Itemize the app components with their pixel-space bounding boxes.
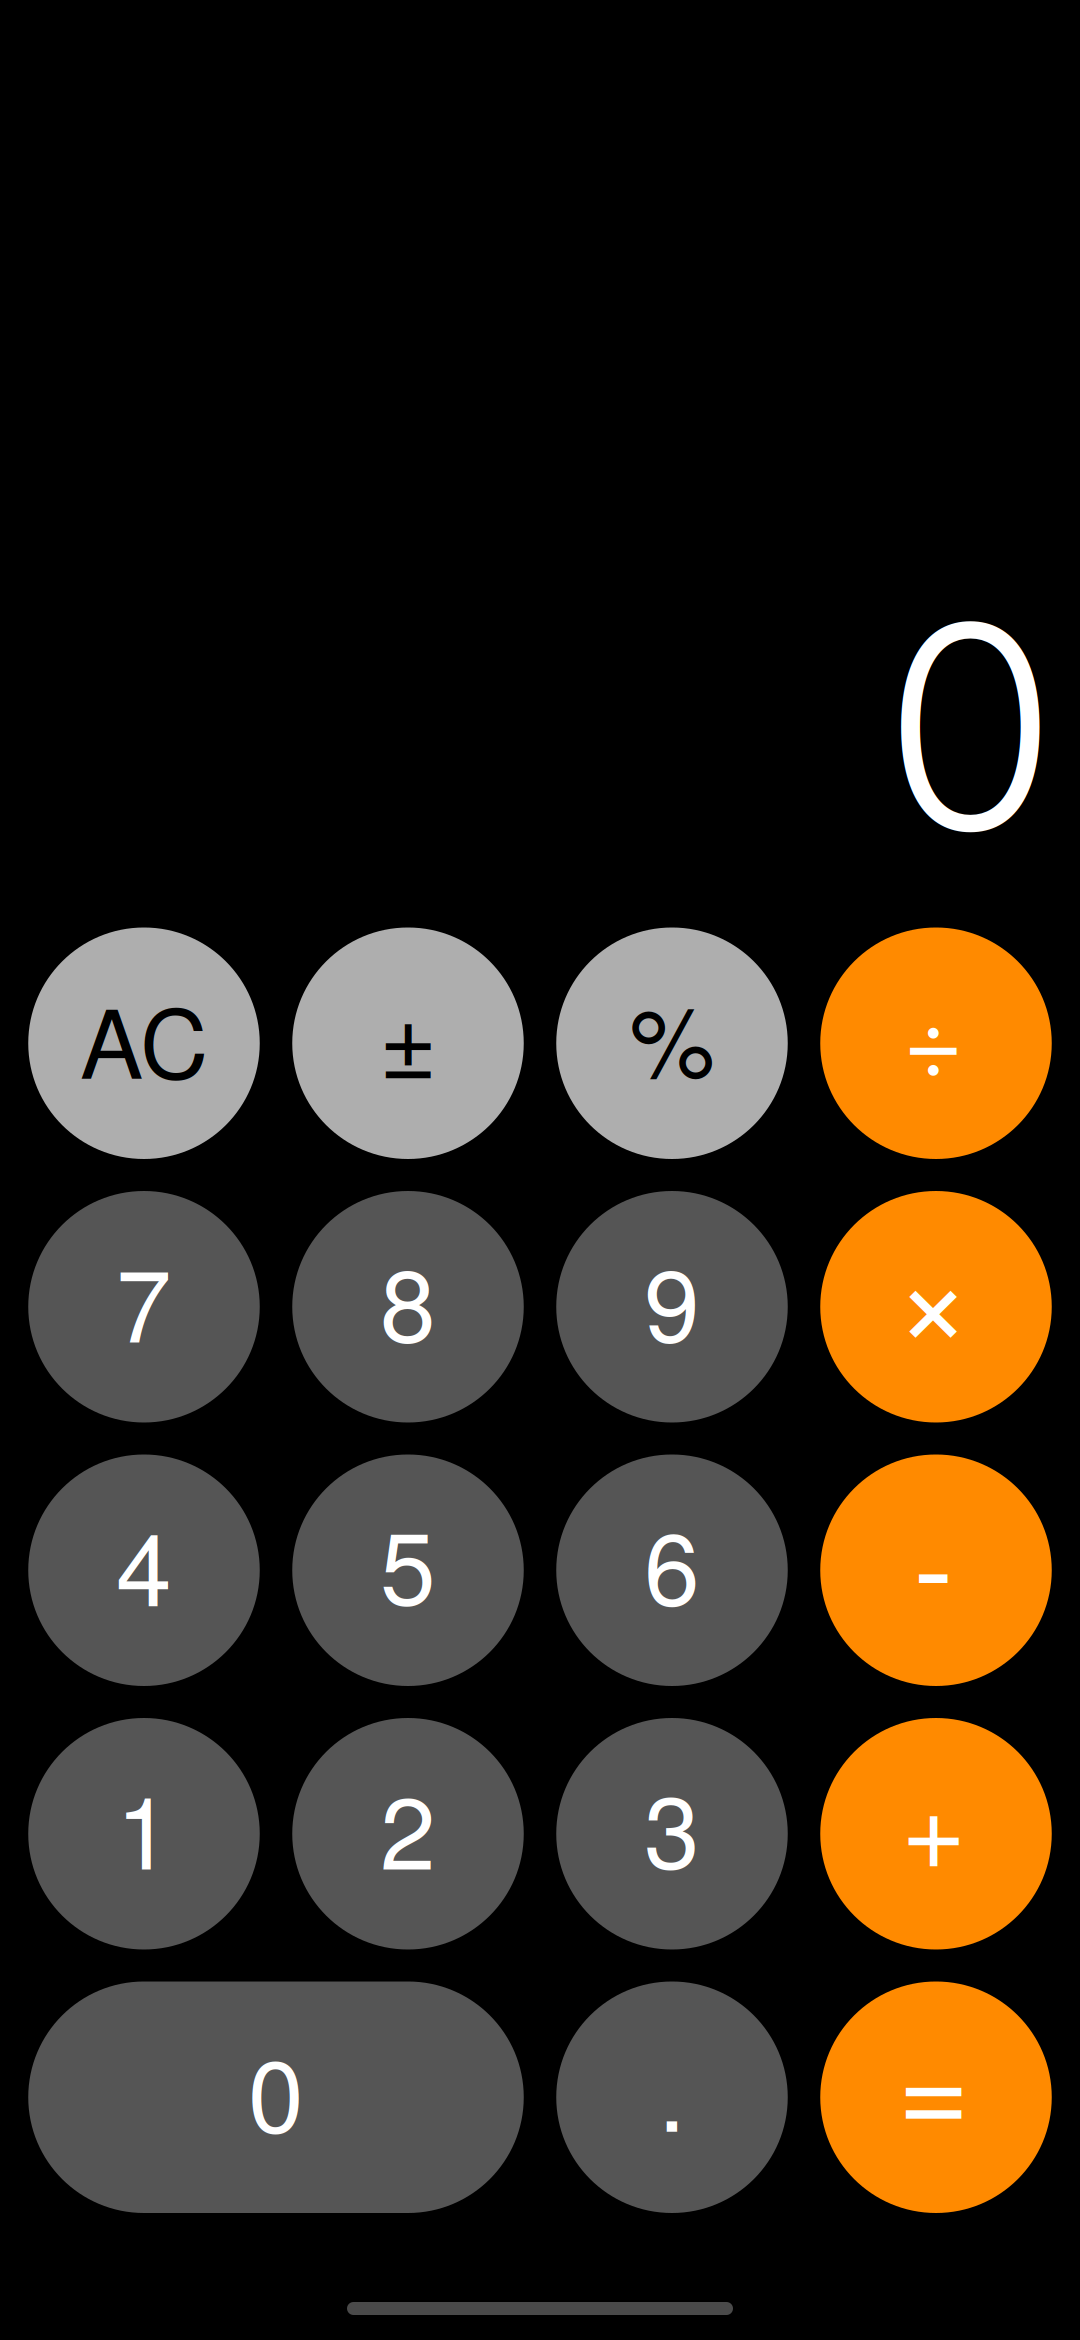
button[interactable]: 6 bbox=[556, 1454, 788, 1686]
staticText: 0 bbox=[883, 555, 1058, 897]
button[interactable]: Equals bbox=[820, 1981, 1052, 2213]
staticText: 1 bbox=[116, 1755, 172, 1898]
staticText: AC bbox=[80, 970, 208, 1106]
staticText: 9 bbox=[644, 1227, 700, 1370]
button[interactable]: Decimal point bbox=[556, 1981, 788, 2213]
button[interactable]: Plus minus bbox=[292, 927, 524, 1159]
staticText: ± bbox=[379, 963, 437, 1106]
button[interactable]: 8 bbox=[292, 1191, 524, 1422]
staticText: - bbox=[913, 1474, 953, 1646]
staticText: 0 bbox=[248, 2018, 304, 2161]
staticText: 5 bbox=[380, 1490, 436, 1633]
staticText: 3 bbox=[644, 1754, 700, 1897]
button[interactable]: 7 bbox=[28, 1191, 260, 1422]
staticText: = bbox=[897, 1992, 969, 2170]
staticText: . bbox=[658, 2017, 686, 2160]
staticText: 4 bbox=[116, 1491, 172, 1634]
button[interactable]: 1 bbox=[28, 1718, 260, 1949]
staticText: × bbox=[895, 1197, 971, 1384]
button[interactable]: Percent bbox=[556, 927, 788, 1159]
button[interactable]: Divide bbox=[820, 927, 1052, 1159]
staticText: ÷ bbox=[903, 958, 964, 1107]
button[interactable]: 3 bbox=[556, 1718, 788, 1949]
button[interactable]: 9 bbox=[556, 1191, 788, 1422]
button[interactable]: Zero bbox=[28, 1981, 524, 2213]
staticText: + bbox=[901, 1741, 966, 1901]
button[interactable]: Add bbox=[820, 1718, 1052, 1949]
button[interactable]: Multiply bbox=[820, 1191, 1052, 1422]
button[interactable]: All clear bbox=[28, 927, 260, 1159]
staticText: 8 bbox=[380, 1227, 436, 1370]
staticText: 7 bbox=[116, 1228, 172, 1371]
staticText: 2 bbox=[380, 1755, 436, 1898]
button[interactable]: 5 bbox=[292, 1454, 524, 1686]
staticText: % bbox=[629, 967, 714, 1104]
button[interactable]: 4 bbox=[28, 1454, 260, 1686]
button[interactable]: 2 bbox=[292, 1718, 524, 1949]
button[interactable]: Subtract bbox=[820, 1454, 1052, 1686]
staticText: 6 bbox=[644, 1490, 700, 1633]
